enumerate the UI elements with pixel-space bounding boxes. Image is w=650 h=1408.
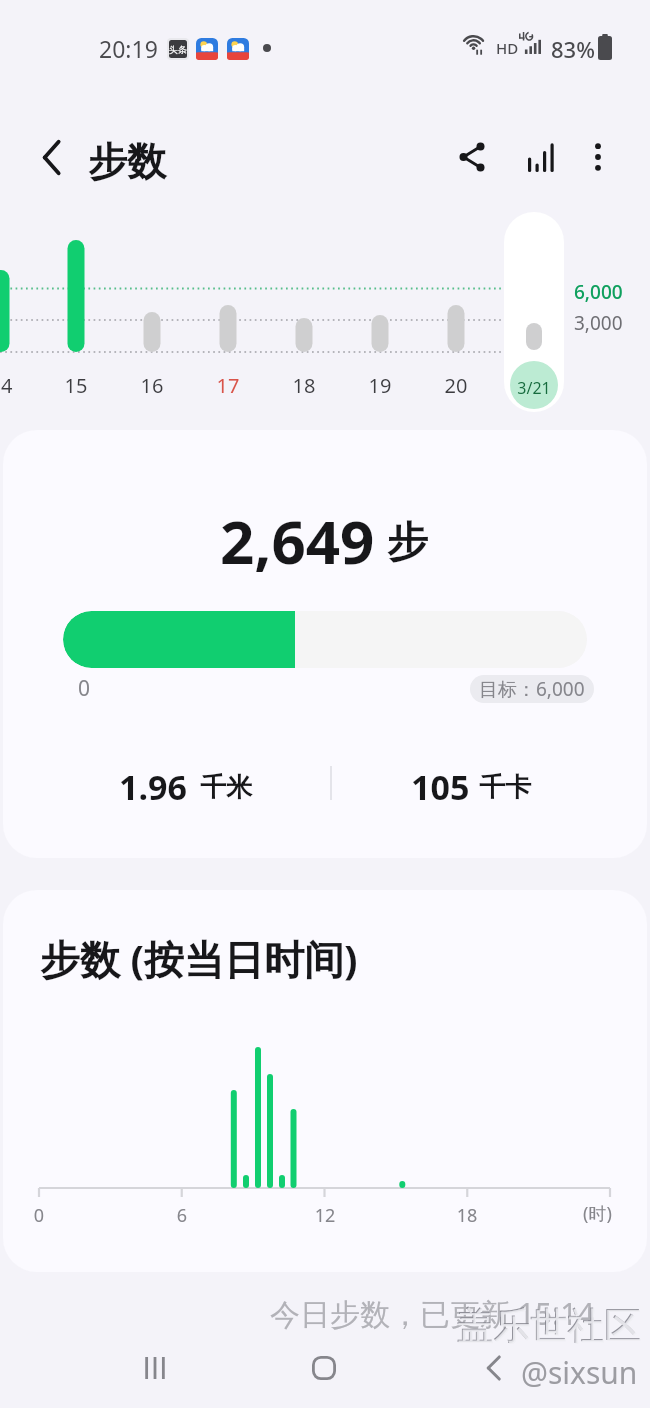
staticText: 0 bbox=[78, 674, 91, 703]
button[interactable]: Share bbox=[446, 131, 498, 183]
staticText: 3,000 bbox=[574, 310, 623, 336]
button[interactable]: 步数 (按当日时间) bbox=[3, 890, 647, 1272]
button[interactable]: Day 18 bbox=[274, 220, 334, 405]
button[interactable]: 2,649 bbox=[3, 430, 647, 858]
staticText: @sixsun bbox=[521, 1352, 638, 1393]
staticText: 18 bbox=[274, 372, 334, 399]
button[interactable]: Back bbox=[25, 131, 77, 183]
staticText: 1.96 bbox=[119, 764, 187, 810]
staticText: 19 bbox=[350, 372, 410, 399]
staticText: 盖乐世社区 bbox=[457, 1303, 642, 1350]
button[interactable]: Day 16 bbox=[122, 220, 182, 405]
staticText: 83% bbox=[551, 34, 595, 64]
staticText: 14 bbox=[0, 372, 31, 399]
staticText: 步数 (按当日时间) bbox=[40, 931, 358, 986]
staticText: 17 bbox=[198, 372, 258, 399]
staticText: HD bbox=[496, 38, 519, 58]
button[interactable]: Selected day 3/21 bbox=[504, 212, 564, 412]
staticText: 3/21 bbox=[504, 377, 564, 399]
staticText: 15 bbox=[46, 372, 106, 399]
staticText: 今日步数，已更新 15:14 bbox=[270, 1293, 595, 1334]
staticText: 12 bbox=[295, 1203, 355, 1228]
staticText: 105 bbox=[411, 764, 470, 810]
button[interactable]: Day 15 bbox=[46, 220, 106, 405]
staticText: 千米 bbox=[200, 771, 252, 804]
staticText: 16 bbox=[122, 372, 182, 399]
staticText: 6 bbox=[152, 1203, 212, 1228]
button[interactable]: Home bbox=[300, 1344, 348, 1392]
staticText: 千卡 bbox=[479, 771, 531, 804]
staticText: 18 bbox=[437, 1203, 497, 1228]
button[interactable]: Recent apps bbox=[131, 1344, 179, 1392]
button[interactable]: Back bbox=[470, 1344, 518, 1392]
staticText: 20 bbox=[426, 372, 486, 399]
staticText: 盖乐世社区 bbox=[456, 1302, 641, 1349]
staticText: 头条 bbox=[169, 44, 187, 55]
button[interactable]: Day 17 bbox=[198, 220, 258, 405]
button[interactable]: Day 19 bbox=[350, 220, 410, 405]
button[interactable]: Day 14 bbox=[0, 220, 31, 405]
staticText: 步数 bbox=[88, 137, 166, 186]
staticText: 0 bbox=[9, 1203, 69, 1228]
staticText: 6,000 bbox=[574, 279, 623, 305]
staticText: 步 bbox=[387, 517, 428, 569]
staticText: 目标：6,000 bbox=[479, 676, 585, 702]
button[interactable]: Day 20 bbox=[426, 220, 486, 405]
button[interactable]: More options bbox=[572, 131, 624, 183]
button[interactable]: Chart view bbox=[515, 131, 567, 183]
staticText: (时) bbox=[583, 1201, 612, 1226]
staticText: 2,649 bbox=[220, 500, 375, 582]
staticText: 20:19 bbox=[99, 33, 158, 64]
